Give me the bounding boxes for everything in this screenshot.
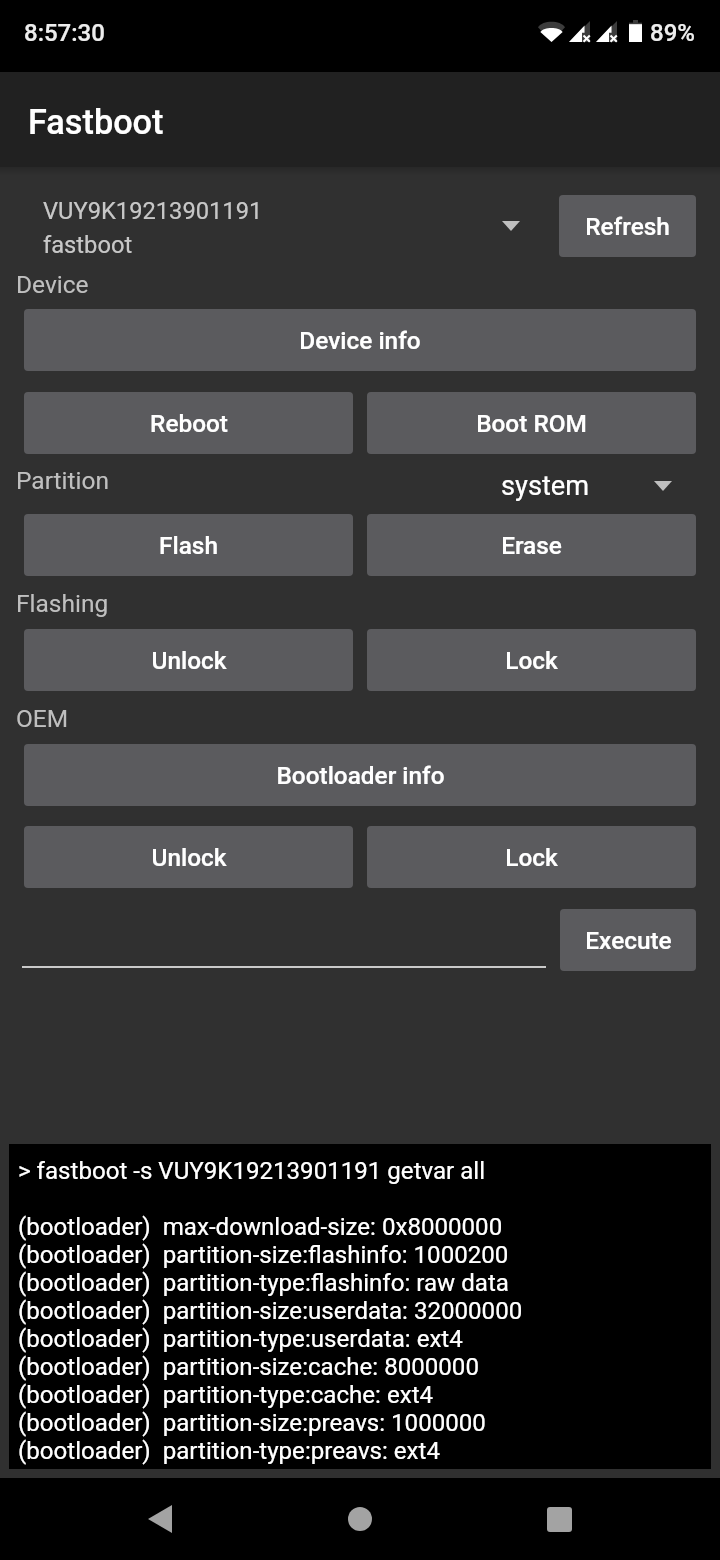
staticText: (bootloader) partition-size:preavs: 1000… (18, 1409, 486, 1437)
staticText: Device (16, 270, 89, 299)
button[interactable]: Lock (367, 629, 696, 691)
staticText: Fastboot (28, 102, 164, 142)
staticText: (bootloader) partition-size:userdata: 32… (18, 1297, 523, 1325)
staticText: Flashing (16, 589, 109, 618)
staticText: (bootloader) partition-type:preavs: ext4 (18, 1437, 440, 1465)
staticText: Execute (585, 926, 672, 955)
staticText: Unlock (151, 843, 227, 872)
staticText: Reboot (150, 409, 228, 438)
staticText: Refresh (585, 212, 670, 241)
button[interactable]: Flash (24, 514, 353, 576)
staticText: fastboot (43, 231, 133, 259)
button[interactable]: Unlock (24, 629, 353, 691)
button[interactable]: Erase (367, 514, 696, 576)
button[interactable]: Recents (529, 1489, 589, 1549)
staticText: Unlock (151, 646, 227, 675)
button[interactable]: Back (130, 1489, 190, 1549)
button[interactable]: Home (330, 1489, 390, 1549)
staticText: Erase (501, 531, 562, 560)
staticText: Boot ROM (476, 409, 587, 438)
staticText: (bootloader) partition-size:cache: 80000… (18, 1353, 479, 1381)
staticText: Partition (16, 466, 109, 495)
staticText: Lock (505, 646, 558, 675)
button[interactable]: Device info (24, 309, 696, 371)
button[interactable]: Bootloader info (24, 744, 696, 806)
staticText: Bootloader info (276, 761, 445, 790)
button[interactable]: Lock (367, 826, 696, 888)
button[interactable]: Select device (24, 190, 536, 262)
staticText: Flash (159, 531, 218, 560)
staticText: (bootloader) partition-type:cache: ext4 (18, 1381, 434, 1409)
button[interactable]: Execute (560, 909, 696, 971)
button[interactable]: Command input (22, 909, 546, 968)
staticText: system (501, 470, 590, 502)
button[interactable]: Unlock (24, 826, 353, 888)
staticText: 8:57:30 (24, 19, 105, 47)
button[interactable]: Boot ROM (367, 392, 696, 454)
staticText: VUY9K19213901191 (43, 197, 263, 225)
button[interactable]: Refresh (559, 195, 696, 257)
staticText: (bootloader) partition-size:flashinfo: 1… (18, 1241, 509, 1269)
staticText: (bootloader) partition-type:flashinfo: r… (18, 1269, 509, 1297)
staticText: OEM (16, 704, 69, 733)
staticText: (bootloader) partition-type:userdata: ex… (18, 1325, 463, 1353)
staticText: 89% (650, 19, 695, 47)
staticText: Device info (299, 326, 421, 355)
button[interactable]: Select partition (501, 470, 672, 502)
button[interactable]: Reboot (24, 392, 353, 454)
staticText: (bootloader) max-download-size: 0x800000… (18, 1213, 503, 1241)
staticText: > fastboot -s VUY9K19213901191 getvar al… (18, 1157, 486, 1185)
staticText: Lock (505, 843, 558, 872)
